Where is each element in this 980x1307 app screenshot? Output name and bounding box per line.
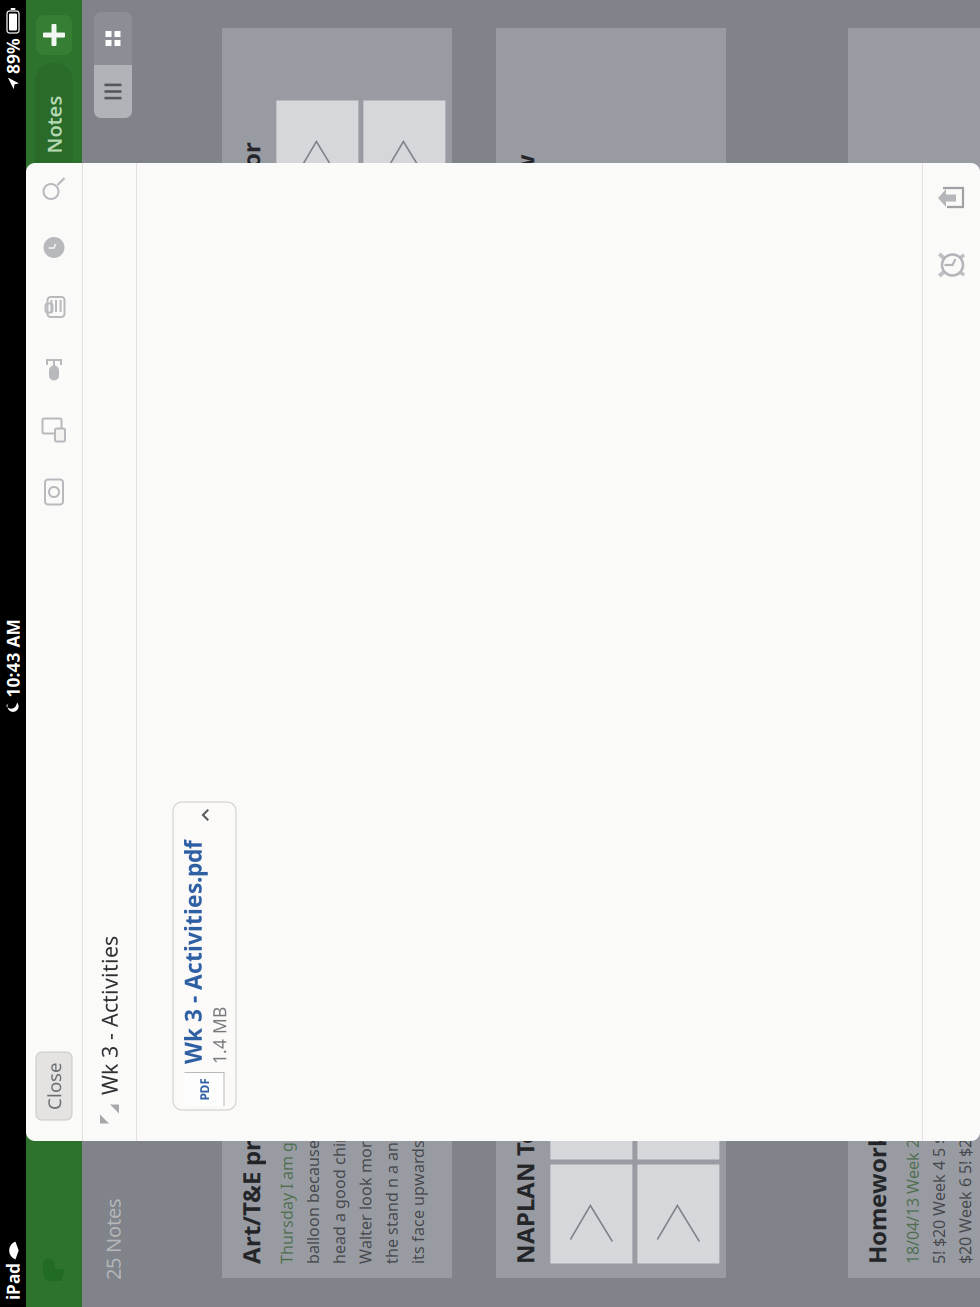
button[interactable]: Excursion bbox=[185, 1263, 475, 1307]
button[interactable]: Science Ideas bbox=[0, 1263, 155, 1307]
button[interactable]: Wk 2 Spelling bbox=[185, 659, 475, 889]
staticText: Term Planner bbox=[199, 1024, 358, 1056]
staticText: Science Ideas bbox=[0, 1276, 37, 1307]
staticText: 1.4 MB bbox=[79, 371, 136, 394]
button[interactable]: Library List bbox=[505, 1011, 795, 1241]
staticText: its face upwards. bbox=[199, 845, 327, 866]
staticText: the stand n a angle bbox=[199, 818, 344, 840]
staticText: Walter look more an bbox=[0, 518, 33, 539]
button[interactable]: PDF bbox=[33, 336, 341, 399]
button[interactable]: NAPLAN Test - bbox=[0, 659, 155, 889]
button[interactable]: Search bbox=[943, 206, 966, 229]
button[interactable]: Close bbox=[23, 199, 91, 235]
button[interactable]: Maths Helping bbox=[825, 1263, 980, 1307]
staticText: Sport Day bbox=[519, 1276, 635, 1307]
staticText: Thursday I am going bbox=[0, 439, 35, 461]
button[interactable]: Sport Day bbox=[505, 1263, 795, 1307]
button[interactable]: Term Planner bbox=[185, 1011, 475, 1241]
staticText: balloon because it w bbox=[0, 466, 34, 487]
staticText: NAPLAN Test - bbox=[0, 672, 49, 704]
button[interactable]: Share note bbox=[920, 1088, 971, 1141]
staticText: head a good chin wh bbox=[0, 492, 37, 513]
staticText: Maths Helping bbox=[839, 1276, 980, 1307]
staticText: Homework sco bbox=[0, 1024, 56, 1056]
staticText: Excursion bbox=[199, 1276, 314, 1307]
button[interactable]: Journal bbox=[825, 1011, 980, 1241]
button[interactable]: Art/T&E project bbox=[0, 385, 155, 615]
button[interactable]: Expand bbox=[10, 255, 48, 291]
staticText: Art/T&E project bbox=[0, 398, 60, 430]
staticText: PDF bbox=[43, 360, 66, 376]
button[interactable]: Homework sco bbox=[0, 1011, 155, 1241]
staticText: Walter look more an bbox=[199, 792, 353, 813]
